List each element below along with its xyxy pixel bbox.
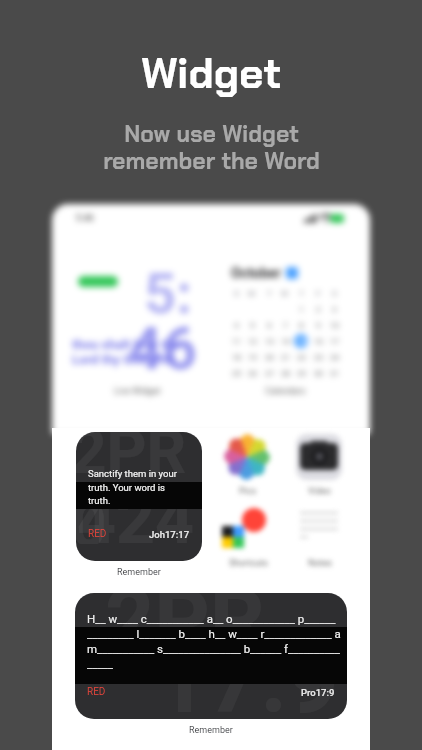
staticText: 24 <box>330 353 339 362</box>
staticText: 19 <box>248 353 257 362</box>
staticText: 13 <box>265 337 274 346</box>
button[interactable]: 2PR0 <box>76 432 202 561</box>
staticText: 20 <box>265 353 274 362</box>
staticText: Remember <box>117 567 161 578</box>
staticText: 17 <box>330 337 339 346</box>
staticText: Shortcuts <box>229 558 268 569</box>
staticText: 30 <box>314 369 323 378</box>
button[interactable]: 2PR <box>75 593 347 719</box>
staticText: Notes <box>308 558 332 569</box>
staticText: 18 <box>232 353 241 362</box>
staticText: 10 <box>330 321 339 330</box>
staticText: 17:9 <box>155 627 340 719</box>
staticText: 28 <box>281 369 290 378</box>
staticText: 2PR <box>105 593 265 670</box>
staticText: 21 <box>281 353 290 362</box>
staticText: 46 <box>128 313 197 383</box>
staticText: Video <box>308 486 331 497</box>
staticText: Widget <box>141 46 281 101</box>
staticText: Joh17:17 <box>149 529 190 540</box>
staticText: 15 <box>297 337 306 346</box>
staticText: RED <box>87 686 106 698</box>
staticText: H__ w____ c___________ a__ o____________… <box>87 612 341 671</box>
staticText: 22 <box>297 353 306 362</box>
staticText: 16 <box>314 337 323 346</box>
staticText: M <box>248 289 256 298</box>
staticText: Pics <box>239 486 257 497</box>
staticText: 14 <box>281 337 290 346</box>
staticText: thou shalt love the <box>72 337 180 352</box>
staticText: W <box>281 289 289 298</box>
staticText: Remember <box>189 725 233 736</box>
staticText: October <box>231 265 281 281</box>
staticText: 5:46 <box>76 213 94 224</box>
staticText: Lord thy God with <box>72 352 175 367</box>
staticText: 25 <box>232 369 241 378</box>
staticText: 31 <box>330 369 339 378</box>
staticText: 26 <box>248 369 257 378</box>
staticText: 29 <box>297 369 306 378</box>
staticText: 23 <box>314 353 323 362</box>
staticText: Pro17:9 <box>301 687 335 698</box>
staticText: 27 <box>265 369 274 378</box>
staticText: Calendars <box>265 386 306 397</box>
staticText: 5: <box>144 261 192 327</box>
staticText: Now use Widget remember the Word <box>103 119 320 176</box>
staticText: RED <box>88 528 107 540</box>
staticText: Live Widget <box>114 386 161 397</box>
staticText: 424 <box>77 480 195 560</box>
staticText: 12 <box>248 337 257 346</box>
staticText: Sanctify them in your truth. Your word i… <box>88 468 184 506</box>
staticText: 2PR0 <box>76 432 197 544</box>
